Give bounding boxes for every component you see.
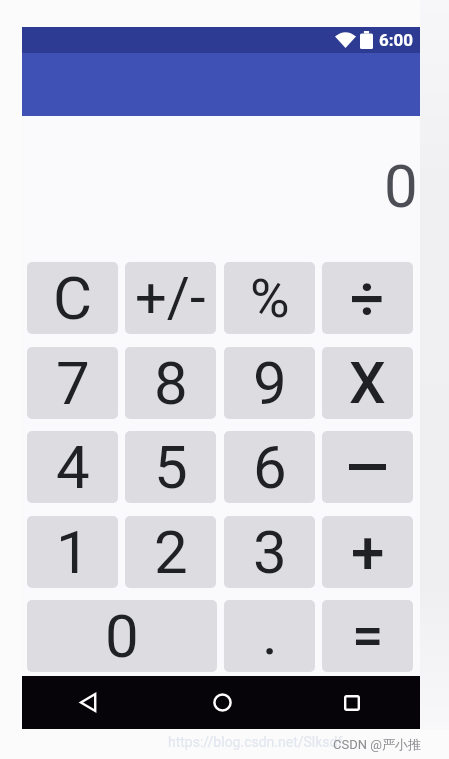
button[interactable]: + [322,516,413,588]
button[interactable] [78,692,99,713]
staticText: 1 [56,517,90,587]
button[interactable]: 2 [125,516,216,588]
button[interactable]: . [224,600,315,672]
staticText: 4 [56,432,90,502]
staticText: = [352,603,384,669]
staticText: 9 [253,348,287,418]
staticText: CSDN @严小推 [333,736,421,752]
staticText: X [349,349,386,417]
button[interactable]: = [322,600,413,672]
staticText: % [250,267,290,330]
staticText: 0 [105,601,139,671]
button[interactable]: 1 [27,516,118,588]
staticText: 2 [154,517,188,587]
button[interactable] [344,695,360,711]
staticText: https://blog.csdn.net/Slksdf [168,734,343,750]
button[interactable]: 7 [27,347,118,419]
button[interactable]: 3 [224,516,315,588]
staticText: 6:00 [379,30,414,50]
button[interactable]: 4 [27,431,118,503]
staticText: C [53,263,93,333]
staticText: 0 [384,151,418,221]
staticText: + [351,517,385,587]
button[interactable]: +/- [125,262,216,334]
button[interactable]: 5 [125,431,216,503]
staticText: +/- [135,265,206,331]
staticText: . [262,600,278,668]
button[interactable]: 6 [224,431,315,503]
staticText: 5 [154,432,188,502]
button[interactable]: 0 [27,600,217,672]
button[interactable]: % [224,262,315,334]
button[interactable]: 8 [125,347,216,419]
button[interactable]: 9 [224,347,315,419]
staticText: 8 [154,348,188,418]
button[interactable] [322,431,413,503]
button[interactable]: C [27,262,118,334]
button[interactable]: X [322,347,413,419]
staticText: 7 [56,348,90,418]
staticText: ÷ [350,263,385,333]
button[interactable]: ÷ [322,262,413,334]
button[interactable] [213,693,232,712]
staticText: 3 [253,517,287,587]
staticText: 6 [253,432,287,502]
